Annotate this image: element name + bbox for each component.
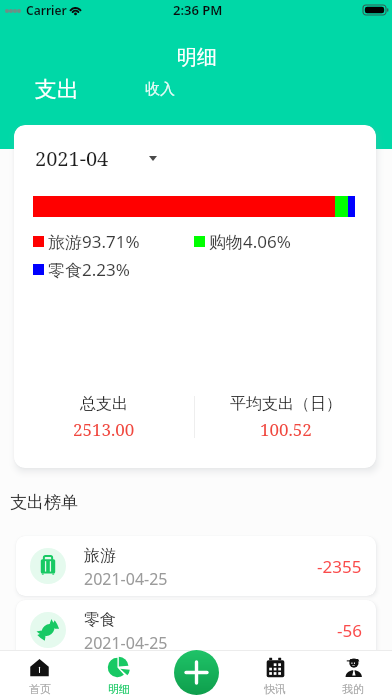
button[interactable]: 零食 (16, 600, 376, 660)
staticText: 旅游93.71% (48, 230, 140, 253)
staticText: 总支出 (80, 394, 128, 414)
staticText: 我的 (342, 682, 364, 696)
button[interactable]: 旅游 (16, 536, 376, 596)
staticText: 明细 (177, 45, 217, 70)
staticText: 支出榜单 (10, 492, 78, 513)
staticText: 支出 (35, 76, 79, 104)
staticText: 旅游 (84, 546, 116, 566)
staticText: 100.52 (260, 418, 312, 441)
staticText: -2355 (317, 555, 362, 578)
staticText: 购物4.06% (209, 230, 291, 253)
staticText: 零食2.23% (48, 258, 130, 281)
staticText: 零食 (84, 610, 116, 630)
staticText: 2:36 PM (173, 1, 223, 19)
button[interactable]: Add expense (174, 650, 219, 695)
staticText: Carrier (26, 2, 67, 18)
staticText: 2021-04 (35, 145, 109, 172)
button[interactable]: 2021-04 (28, 139, 167, 178)
staticText: 平均支出（日） (230, 394, 342, 414)
staticText: 2021-04-25 (84, 632, 168, 654)
button[interactable]: 明细 (79, 650, 158, 696)
button[interactable]: 首页 (0, 650, 79, 696)
staticText: 快讯 (264, 682, 286, 696)
staticText: 2021-04-25 (84, 568, 168, 590)
button[interactable]: 快讯 (236, 650, 314, 696)
staticText: 收入 (145, 80, 175, 99)
button[interactable]: 我的 (314, 650, 392, 696)
staticText: 明细 (108, 682, 130, 696)
staticText: 首页 (29, 682, 51, 696)
button[interactable]: 支出 (27, 72, 87, 108)
staticText: 2513.00 (73, 418, 135, 441)
button[interactable]: 收入 (137, 76, 183, 103)
staticText: -56 (337, 619, 362, 642)
